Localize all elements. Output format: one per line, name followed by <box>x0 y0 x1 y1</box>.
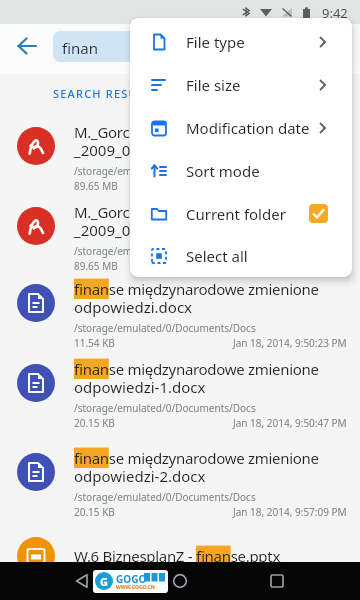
staticText: WWW.GOGO.CN <box>116 584 155 591</box>
staticText: 9:42 <box>322 4 348 22</box>
staticText: Jan 18, 2014, 9:50:23 PM <box>233 336 347 350</box>
button[interactable] <box>17 537 55 575</box>
staticText: SEARCH RESULTS <box>53 86 160 101</box>
staticText: Jan 18, 2014, 9:50:47 PM <box>233 416 347 430</box>
button[interactable] <box>17 364 55 402</box>
staticText: 20.15 KB <box>74 505 115 519</box>
staticText: File type <box>186 32 245 52</box>
button[interactable]: File size <box>130 63 352 106</box>
staticText: /storage/emulated/0/Documents/Docs <box>74 321 256 335</box>
staticText: File size <box>186 75 241 95</box>
button[interactable] <box>17 207 55 245</box>
button[interactable]: File type <box>130 20 352 63</box>
staticText: /storage/emulated/0/Documents/Docs <box>74 490 256 504</box>
staticText: finan <box>62 38 98 58</box>
staticText: G <box>100 574 108 589</box>
button[interactable]: Modification date <box>130 106 352 149</box>
button[interactable]: Current folder <box>130 192 352 235</box>
staticText: /storage/emulated/0/Documents/Docs <box>74 401 256 415</box>
staticText: W.6 BiznesplanZ - finanse.pptx <box>74 546 281 566</box>
staticText: finanse międzynarodowe zmienione <box>74 448 319 468</box>
button[interactable] <box>75 574 89 588</box>
button[interactable] <box>17 127 55 165</box>
staticText: 20.15 KB <box>74 416 115 430</box>
button[interactable] <box>17 453 55 491</box>
staticText: odpowiedzi-2.docx <box>74 466 206 486</box>
staticText: odpowiedzi-1.docx <box>74 377 206 397</box>
staticText: 89.65 MB <box>74 259 118 273</box>
staticText: _2009_08_20_fin <box>74 140 188 160</box>
staticText: finanse międzynarodowe zmienione <box>74 279 319 299</box>
staticText: M._Gorczyńska <box>74 202 176 222</box>
staticText: 11.54 KB <box>74 336 115 350</box>
staticText: _2009_08_20_fin <box>74 220 188 240</box>
button[interactable] <box>17 284 55 322</box>
button[interactable] <box>16 35 38 57</box>
staticText: odpowiedzi.docx <box>74 297 193 317</box>
button[interactable] <box>173 574 187 588</box>
staticText: GOGO <box>116 572 147 586</box>
staticText: /storage/emulated/0/Documents <box>74 164 230 178</box>
button[interactable] <box>270 574 284 588</box>
staticText: /storage/emulated/0/Documents <box>74 244 230 258</box>
staticText: Modification date <box>186 118 310 138</box>
button[interactable] <box>53 31 137 62</box>
button[interactable]: Select all <box>130 235 352 277</box>
staticText: Select all <box>186 246 248 266</box>
staticText: Sort mode <box>186 161 260 181</box>
staticText: finanse międzynarodowe zmienione <box>74 359 319 379</box>
staticText: M._Gorczyńska <box>74 122 176 142</box>
staticText: 89.65 MB <box>74 179 118 193</box>
staticText: Current folder <box>186 204 286 224</box>
button[interactable]: Sort mode <box>130 149 352 192</box>
staticText: Jan 18, 2014, 9:57:09 PM <box>233 505 347 519</box>
